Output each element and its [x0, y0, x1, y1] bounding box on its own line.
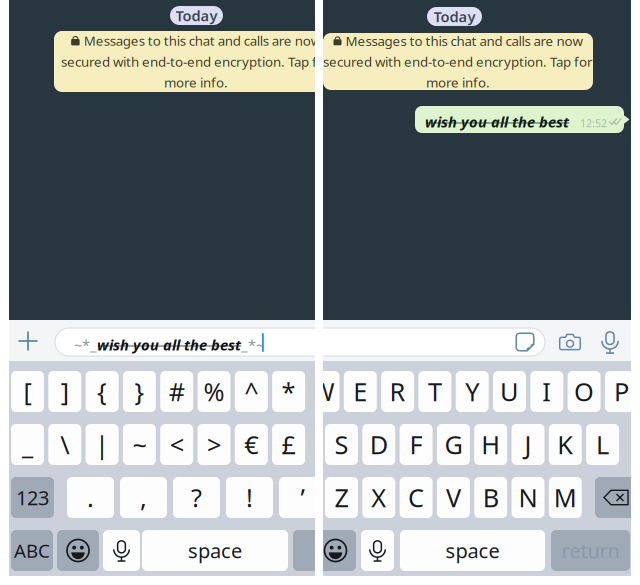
- staticText: [: [23, 375, 31, 408]
- button[interactable]: I: [530, 371, 563, 412]
- button[interactable]: T: [418, 371, 451, 412]
- staticText: \: [60, 428, 69, 461]
- staticText: O: [574, 375, 594, 408]
- button[interactable]: \: [48, 424, 81, 465]
- staticText: F: [410, 428, 423, 461]
- staticText: secured with end-to-end encryption. Tap …: [323, 53, 593, 70]
- staticText: £: [282, 428, 296, 461]
- staticText: 123: [16, 484, 49, 511]
- button[interactable]: W: [306, 371, 339, 412]
- staticText: secured with end-to-end encryption. Tap …: [61, 53, 331, 70]
- staticText: ~*_: [74, 335, 97, 354]
- staticText: more info.: [164, 73, 228, 91]
- staticText: Today: [175, 6, 217, 25]
- staticText: !: [246, 481, 253, 514]
- button[interactable]: !: [226, 477, 273, 518]
- staticText: more info.: [426, 73, 490, 91]
- staticText: ]: [61, 375, 69, 408]
- staticText: Y: [465, 375, 479, 408]
- staticText: W: [311, 375, 335, 408]
- button[interactable]: |: [86, 424, 119, 465]
- button[interactable]: J: [511, 424, 544, 465]
- button[interactable]: {: [86, 371, 119, 412]
- button[interactable]: Emoji: [315, 530, 356, 571]
- staticText: *: [282, 375, 296, 408]
- staticText: _*~: [241, 335, 264, 354]
- button[interactable]: space: [142, 530, 288, 571]
- button[interactable]: M: [549, 477, 582, 518]
- staticText: V: [446, 481, 461, 514]
- button[interactable]: Dictate: [361, 530, 394, 571]
- button[interactable]: ’: [279, 477, 326, 518]
- staticText: ^: [244, 375, 258, 408]
- button[interactable]: %: [197, 371, 230, 412]
- button[interactable]: €: [235, 424, 268, 465]
- button[interactable]: N: [511, 477, 544, 518]
- button[interactable]: F: [400, 424, 433, 465]
- staticText: .: [87, 481, 94, 514]
- staticText: {: [97, 375, 107, 408]
- button[interactable]: >: [197, 424, 230, 465]
- button[interactable]: *: [272, 371, 305, 412]
- button[interactable]: }: [123, 371, 156, 412]
- button[interactable]: L: [586, 424, 619, 465]
- staticText: Messages to this chat and calls are now: [345, 32, 582, 50]
- staticText: #: [169, 375, 185, 408]
- button[interactable]: Y: [456, 371, 489, 412]
- button[interactable]: [293, 530, 333, 571]
- button[interactable]: G: [437, 424, 470, 465]
- button[interactable]: return: [551, 530, 630, 571]
- staticText: J: [524, 428, 531, 461]
- button[interactable]: Stickers: [511, 328, 539, 356]
- button[interactable]: R: [381, 371, 414, 412]
- button[interactable]: Camera: [555, 328, 585, 356]
- staticText: ABC: [14, 538, 50, 563]
- button[interactable]: D: [362, 424, 395, 465]
- button[interactable]: ^: [235, 371, 268, 412]
- button[interactable]: Emoji: [57, 530, 99, 571]
- staticText: }: [134, 375, 144, 408]
- button[interactable]: P: [605, 371, 638, 412]
- staticText: Z: [334, 481, 348, 514]
- staticText: L: [596, 428, 609, 461]
- staticText: N: [518, 481, 537, 514]
- staticText: G: [444, 428, 462, 461]
- button[interactable]: Backspace: [595, 477, 638, 518]
- button[interactable]: H: [474, 424, 507, 465]
- button[interactable]: ?: [173, 477, 220, 518]
- button[interactable]: ABC: [11, 530, 53, 571]
- button[interactable]: [: [11, 371, 44, 412]
- button[interactable]: Dictate: [103, 530, 140, 571]
- button[interactable]: #: [160, 371, 193, 412]
- button[interactable]: .: [67, 477, 114, 518]
- button[interactable]: V: [437, 477, 470, 518]
- staticText: space: [188, 537, 242, 564]
- button[interactable]: ]: [48, 371, 81, 412]
- button[interactable]: Z: [325, 477, 358, 518]
- button[interactable]: B: [474, 477, 507, 518]
- button[interactable]: Voice message: [597, 328, 623, 356]
- button[interactable]: Attach: [12, 325, 44, 357]
- button[interactable]: _: [11, 424, 44, 465]
- button[interactable]: 123: [11, 477, 54, 518]
- button[interactable]: O: [568, 371, 601, 412]
- button[interactable]: U: [493, 371, 526, 412]
- staticText: P: [614, 375, 629, 408]
- staticText: T: [428, 375, 442, 408]
- button[interactable]: <: [160, 424, 193, 465]
- button[interactable]: £: [272, 424, 305, 465]
- button[interactable]: S: [325, 424, 358, 465]
- staticText: M: [554, 481, 577, 514]
- button[interactable]: ,: [120, 477, 167, 518]
- button[interactable]: K: [549, 424, 582, 465]
- button[interactable]: X: [362, 477, 395, 518]
- staticText: Today: [433, 7, 475, 26]
- staticText: D: [370, 428, 388, 461]
- button[interactable]: ~: [123, 424, 156, 465]
- button[interactable]: E: [344, 371, 377, 412]
- button[interactable]: C: [400, 477, 433, 518]
- staticText: wish you all the best: [97, 335, 241, 354]
- button[interactable]: space: [400, 530, 545, 571]
- staticText: H: [481, 428, 500, 461]
- staticText: %: [203, 375, 224, 408]
